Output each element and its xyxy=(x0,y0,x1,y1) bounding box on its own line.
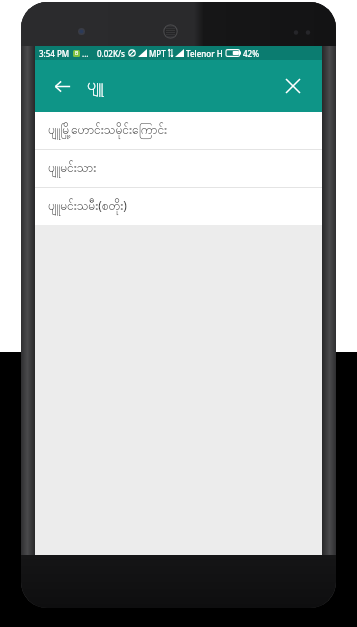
staticText: 42% xyxy=(243,48,259,59)
staticText: ပျူ xyxy=(87,74,104,98)
button[interactable]: Close xyxy=(274,67,312,105)
staticText: MPT xyxy=(149,48,166,59)
button[interactable]: ပျူမင်းသား xyxy=(35,150,322,187)
button[interactable]: ပျူမြို့ဟောင်းသမိုင်းကြောင်း xyxy=(35,112,322,149)
staticText: B xyxy=(75,50,79,57)
button[interactable]: ပျူမင်းသမီး(စတိုး) xyxy=(35,188,322,225)
staticText: ပျူမြို့ဟောင်းသမိုင်းကြောင်း xyxy=(48,122,168,140)
staticText: 3:54 PM xyxy=(39,48,70,59)
staticText: 0.02K/s xyxy=(97,48,125,59)
staticText: ပျူမင်းသား xyxy=(48,160,97,178)
staticText: ... xyxy=(82,48,89,59)
staticText: ပျူမင်းသမီး(စတိုး) xyxy=(48,197,127,216)
button[interactable]: Back xyxy=(43,67,81,105)
staticText: Telenor H xyxy=(186,48,223,59)
